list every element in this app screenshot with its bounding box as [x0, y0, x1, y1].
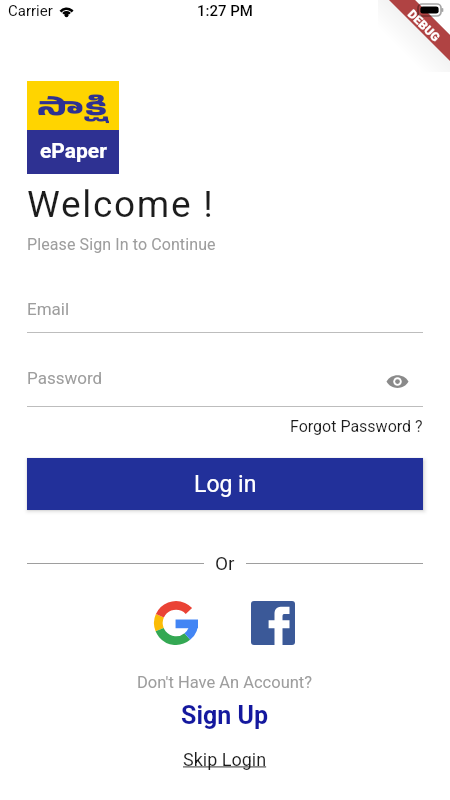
- staticText: Carrier: [8, 2, 53, 20]
- button[interactable]: Show password: [385, 369, 410, 394]
- staticText: Password: [27, 368, 103, 388]
- staticText: Or: [215, 552, 235, 574]
- staticText: ePaper: [40, 139, 107, 164]
- staticText: Don't Have An Account?: [137, 673, 313, 692]
- button[interactable]: Log in: [27, 458, 423, 510]
- staticText: 1:27 PM: [197, 2, 253, 20]
- staticText: Log in: [194, 471, 257, 498]
- staticText: సాక్షి: [37, 94, 109, 125]
- button[interactable]: Sign Up: [181, 701, 269, 730]
- button[interactable]: Skip Login: [183, 749, 267, 770]
- staticText: Email: [27, 299, 70, 319]
- staticText: Please Sign In to Continue: [27, 235, 216, 254]
- button[interactable]: Forgot Password ?: [27, 417, 423, 436]
- staticText: DEBUG: [405, 7, 443, 45]
- button[interactable]: Sign in with Facebook: [251, 601, 295, 645]
- staticText: Welcome !: [27, 183, 215, 226]
- button[interactable]: Sign in with Google: [154, 601, 198, 645]
- staticText: Forgot Password ?: [290, 417, 423, 436]
